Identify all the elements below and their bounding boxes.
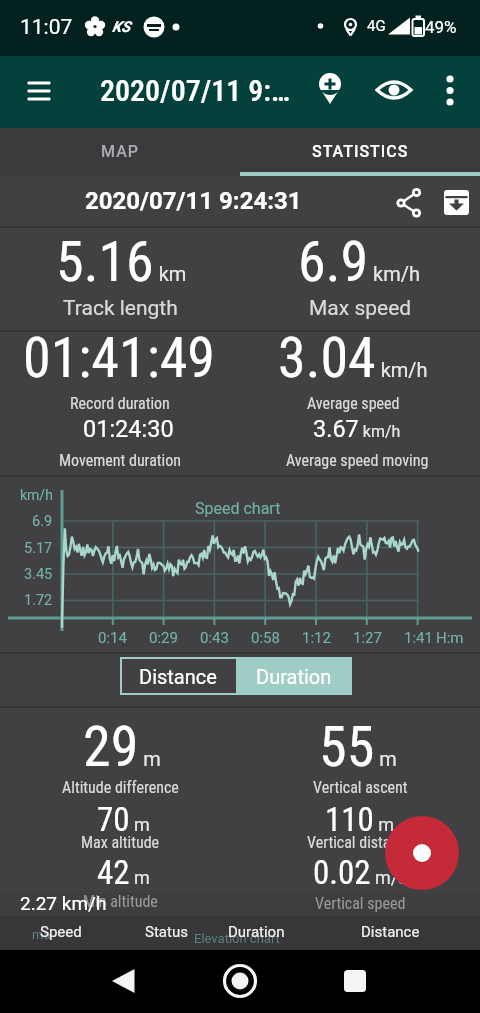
staticText: Duration	[256, 665, 332, 688]
staticText: 1:27	[353, 629, 382, 647]
staticText: Record duration	[70, 394, 170, 413]
button[interactable]	[388, 180, 432, 224]
staticText: Vertical speed	[315, 894, 406, 913]
staticText: 1:41	[404, 629, 433, 647]
staticText: Distance	[139, 665, 217, 688]
button[interactable]: Distance	[120, 657, 236, 695]
staticText: Max altitude	[81, 833, 160, 852]
staticText: Elevation chart	[194, 931, 280, 946]
button[interactable]	[306, 66, 354, 114]
staticText: 3.45	[24, 566, 53, 583]
staticText: 42 m	[97, 853, 150, 892]
staticText: 5.17	[24, 540, 53, 557]
button[interactable]	[14, 68, 62, 116]
staticText: Distance	[361, 923, 420, 941]
staticText: MAP	[101, 142, 140, 161]
button[interactable]	[370, 66, 418, 114]
staticText: 2.27 km/h	[20, 892, 107, 914]
staticText: Status	[145, 923, 188, 941]
staticText: Average speed	[307, 394, 400, 413]
staticText: Duration	[228, 923, 285, 941]
staticText: Altitude difference	[62, 778, 179, 797]
staticText: 110 m	[325, 800, 395, 839]
staticText: 2020/07/11 9:24:31	[85, 187, 302, 215]
button[interactable]	[240, 128, 480, 176]
button[interactable]	[436, 180, 480, 224]
staticText: 2020/07/11 9:…	[100, 73, 291, 108]
staticText: Average speed moving	[286, 451, 429, 470]
staticText: 0:58	[251, 629, 280, 647]
button[interactable]	[385, 816, 459, 890]
staticText: 1:12	[302, 629, 331, 647]
staticText: km/h	[20, 487, 53, 503]
staticText: 6.9	[32, 513, 53, 530]
staticText: 3.04 km/h	[278, 325, 428, 391]
staticText: 1.72	[24, 592, 53, 609]
button[interactable]: Duration	[236, 657, 352, 695]
button[interactable]	[210, 950, 270, 1013]
staticText: Track length	[63, 296, 178, 321]
staticText: ma	[32, 927, 51, 942]
staticText: 5.16 km	[56, 229, 187, 295]
staticText: Movement duration	[59, 451, 182, 470]
staticText: Min altitude	[83, 892, 158, 911]
button[interactable]	[325, 950, 385, 1013]
staticText: 6.9 km/h	[298, 229, 420, 295]
staticText: Max speed	[309, 296, 412, 321]
button[interactable]	[92, 950, 152, 1013]
staticText: Speed	[40, 923, 82, 941]
staticText: 01:24:30	[83, 415, 174, 443]
staticText: 29 m	[83, 714, 161, 780]
staticText: 0:29	[149, 629, 178, 647]
staticText: 49%	[425, 17, 457, 37]
staticText: STATISTICS	[312, 142, 409, 161]
staticText: Vertical ascent	[313, 778, 408, 797]
staticText: KS	[112, 18, 131, 36]
staticText: 4G	[367, 17, 386, 35]
staticText: H:m	[436, 629, 464, 647]
button[interactable]	[0, 128, 240, 176]
button[interactable]	[428, 66, 472, 114]
staticText: Speed chart	[195, 499, 281, 518]
staticText: 3.67 km/h	[313, 415, 401, 443]
staticText: Vertical distance	[307, 833, 414, 852]
staticText: 11:07	[20, 15, 73, 40]
staticText: 0:43	[200, 629, 229, 647]
staticText: 0:14	[98, 629, 127, 647]
staticText: 0.02 m/s	[313, 853, 408, 892]
staticText: 70 m	[97, 800, 150, 839]
staticText: 01:41:49	[23, 325, 216, 391]
staticText: 55 m	[319, 714, 397, 780]
